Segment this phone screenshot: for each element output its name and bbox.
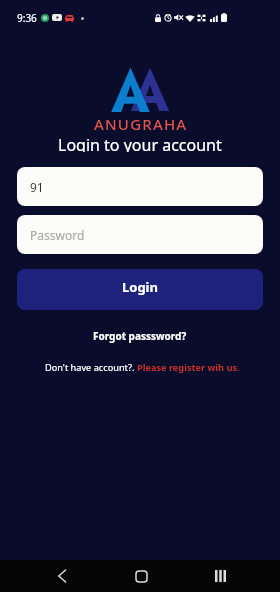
- staticText: 91: [30, 179, 44, 195]
- button[interactable]: Password: [17, 215, 263, 254]
- staticText: Forgot passsword?: [93, 329, 187, 343]
- staticText: Login: [122, 278, 158, 296]
- staticText: Login to your account: [58, 134, 222, 152]
- staticText: Password: [30, 227, 85, 243]
- button[interactable]: Home: [110, 560, 172, 592]
- button[interactable]: Forgot passsword?: [0, 328, 280, 344]
- staticText: 9:36: [17, 11, 37, 25]
- button[interactable]: Please register wih us.: [137, 361, 240, 374]
- button[interactable]: 91: [17, 167, 263, 206]
- button[interactable]: Recent apps: [189, 560, 251, 592]
- button[interactable]: Back: [31, 560, 93, 592]
- staticText: Don't have account?.: [45, 361, 137, 374]
- button[interactable]: Login: [17, 269, 263, 310]
- staticText: ANUGRAHA: [94, 114, 188, 130]
